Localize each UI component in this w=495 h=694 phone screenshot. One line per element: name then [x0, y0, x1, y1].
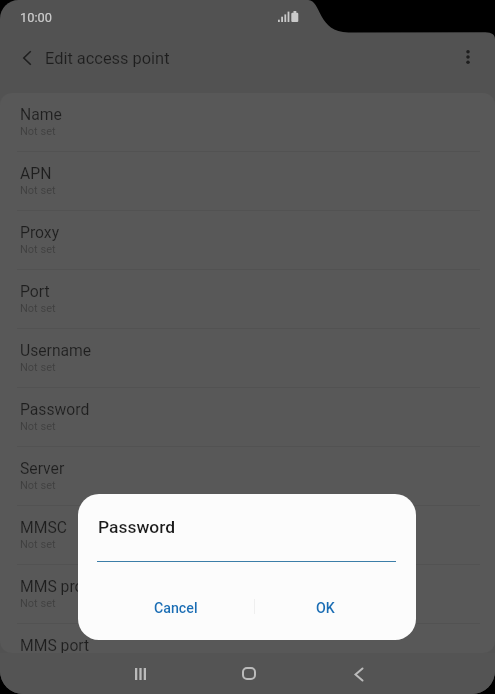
button[interactable]: Recent apps	[114, 653, 166, 694]
button[interactable]: Server	[0, 447, 495, 506]
staticText: Server	[20, 459, 65, 477]
button[interactable]: Username	[0, 329, 495, 388]
staticText: Not set	[20, 479, 56, 492]
staticText: OK	[316, 600, 335, 617]
button[interactable]: Cancel	[98, 588, 254, 628]
staticText: Cancel	[154, 600, 198, 617]
staticText: MMS port	[20, 636, 90, 653]
staticText: Name	[20, 105, 62, 123]
button[interactable]: Name	[0, 93, 495, 152]
button[interactable]: MMS proxy	[0, 565, 495, 624]
button[interactable]: More options	[448, 37, 488, 77]
staticText: Not set	[20, 420, 56, 433]
button[interactable]: Password	[0, 388, 495, 447]
staticText: Not set	[20, 184, 56, 197]
staticText: Not set	[20, 361, 56, 374]
staticText: MMS proxy	[20, 577, 99, 595]
button[interactable]: APN	[0, 152, 495, 211]
staticText: 10:00	[20, 10, 52, 25]
staticText: Not set	[20, 597, 56, 610]
button[interactable]: MMSC	[0, 506, 495, 565]
button[interactable]: Navigate up	[7, 38, 47, 78]
staticText: APN	[20, 164, 52, 182]
staticText: Password	[98, 517, 176, 537]
button[interactable]: Home	[223, 653, 275, 694]
staticText: Not set	[20, 538, 56, 551]
staticText: Username	[20, 341, 92, 359]
staticText: Proxy	[20, 223, 60, 241]
button[interactable]: OK	[254, 588, 396, 628]
button[interactable]: MMS port	[0, 624, 495, 653]
staticText: Not set	[20, 125, 56, 138]
button[interactable]: Back	[333, 654, 385, 694]
button[interactable]: Proxy	[0, 211, 495, 270]
staticText: MMSC	[20, 518, 67, 536]
staticText: Port	[20, 282, 50, 300]
staticText: Not set	[20, 243, 56, 256]
staticText: Password	[20, 400, 90, 418]
staticText: Not set	[20, 302, 56, 315]
staticText: Edit access point	[45, 49, 170, 68]
